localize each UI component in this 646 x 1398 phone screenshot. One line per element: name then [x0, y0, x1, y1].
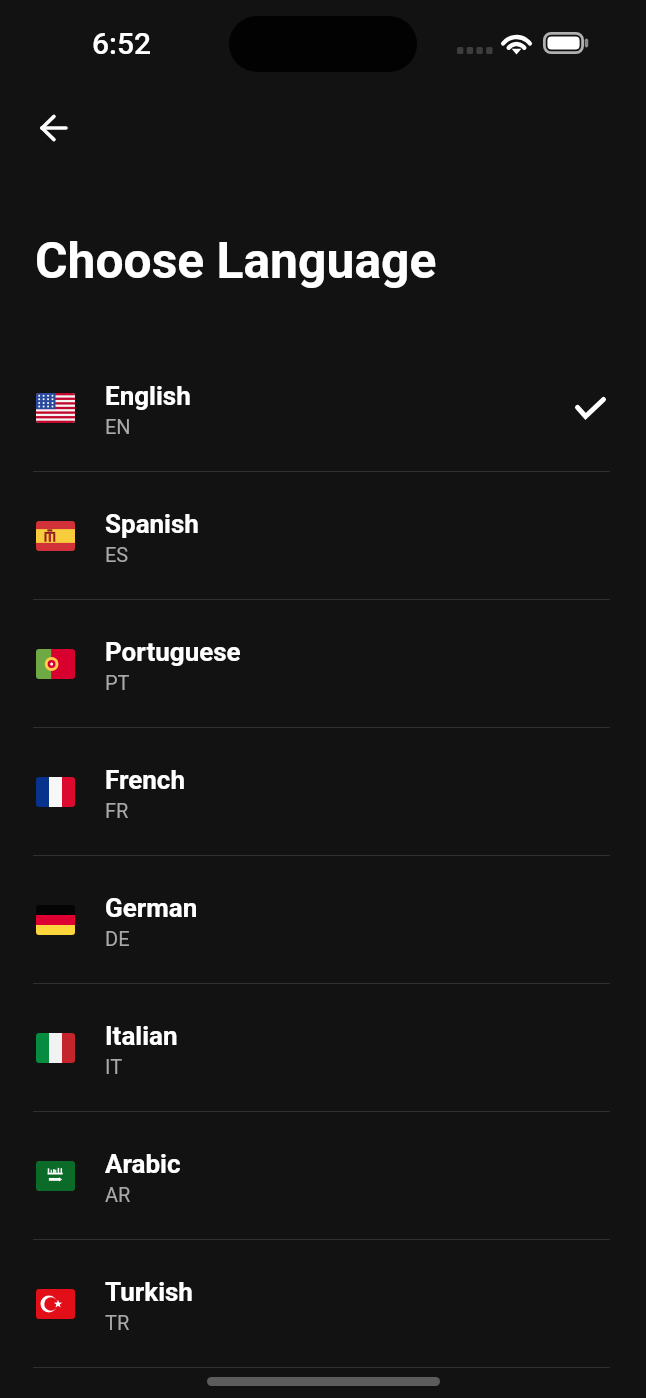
staticText: Spanish [105, 509, 199, 539]
button[interactable]: Portuguese [0, 600, 646, 728]
staticText: TR [105, 1311, 130, 1334]
button[interactable]: Italian [0, 984, 646, 1112]
button[interactable]: Spanish [0, 472, 646, 600]
staticText: EN [105, 415, 131, 438]
staticText: Italian [105, 1021, 178, 1051]
staticText: PT [105, 671, 130, 694]
staticText: Arabic [105, 1149, 181, 1179]
staticText: DE [105, 927, 130, 950]
button[interactable]: Arabic [0, 1112, 646, 1240]
button[interactable]: German [0, 856, 646, 984]
button[interactable]: French [0, 728, 646, 856]
staticText: ES [105, 543, 129, 566]
staticText: AR [105, 1183, 131, 1206]
staticText: French [105, 765, 185, 795]
button[interactable]: English [0, 344, 646, 472]
staticText: Turkish [105, 1277, 193, 1307]
button[interactable]: Back [30, 104, 78, 152]
staticText: German [105, 893, 198, 923]
staticText: FR [105, 799, 129, 822]
staticText: Choose Language [35, 232, 437, 290]
staticText: IT [105, 1055, 123, 1078]
staticText: English [105, 381, 191, 411]
staticText: Portuguese [105, 637, 241, 667]
button[interactable]: Turkish [0, 1240, 646, 1368]
staticText: 6:52 [92, 26, 152, 61]
